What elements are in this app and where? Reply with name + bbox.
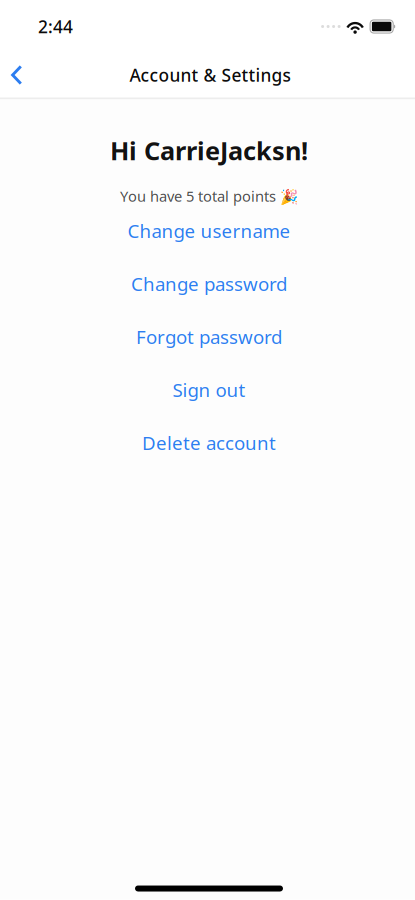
staticText: Forgot password xyxy=(136,324,282,349)
button[interactable]: Change username xyxy=(3,204,415,257)
staticText: Sign out xyxy=(172,377,245,402)
button[interactable]: Change password xyxy=(3,257,415,310)
button[interactable]: Forgot password xyxy=(3,310,415,363)
button[interactable]: Back xyxy=(0,55,34,95)
staticText: You have 5 total points 🎉 xyxy=(120,186,298,206)
staticText: Account & Settings xyxy=(129,63,290,86)
staticText: 2:44 xyxy=(38,15,73,38)
button[interactable]: Delete account xyxy=(3,416,415,469)
staticText: Change password xyxy=(131,271,287,296)
staticText: Delete account xyxy=(142,430,276,455)
button[interactable]: Sign out xyxy=(3,363,415,416)
staticText: Change username xyxy=(127,218,290,243)
staticText: Hi CarrieJacksn! xyxy=(110,133,308,167)
